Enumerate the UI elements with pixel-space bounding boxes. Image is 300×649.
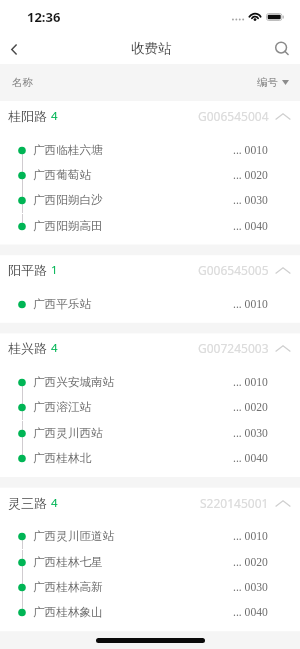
button[interactable]: 桂兴路: [0, 333, 300, 363]
button[interactable]: Search: [267, 34, 297, 64]
staticText: ... 0010: [233, 298, 268, 311]
staticText: ... 0020: [233, 401, 268, 414]
staticText: ... 0030: [233, 581, 268, 594]
staticText: 广西阳朔高田: [33, 219, 103, 234]
staticText: 收费站: [131, 40, 172, 57]
button[interactable]: 广西灵川匝道站: [0, 524, 300, 549]
staticText: G007245003: [198, 340, 269, 356]
button[interactable]: 广西灵川西站: [0, 421, 300, 446]
button[interactable]: 广西兴安城南站: [0, 370, 300, 395]
staticText: ... 0010: [233, 376, 268, 389]
button[interactable]: 广西桂林高新: [0, 575, 300, 600]
staticText: 广西桂林高新: [33, 580, 103, 595]
button[interactable]: 桂阳路: [0, 101, 300, 131]
button[interactable]: 广西葡萄站: [0, 163, 300, 188]
button[interactable]: 广西平乐站: [0, 292, 300, 317]
button[interactable]: 广西桂林北: [0, 446, 300, 471]
staticText: 4: [51, 495, 58, 511]
staticText: 广西桂林七星: [33, 555, 103, 570]
staticText: G006545004: [198, 108, 269, 124]
staticText: ... 0010: [233, 144, 268, 157]
button[interactable]: 编号: [257, 76, 289, 89]
button[interactable]: Back: [0, 34, 29, 64]
staticText: 名称: [12, 76, 33, 89]
staticText: 广西阳朔白沙: [33, 193, 103, 208]
staticText: 12:36: [27, 8, 61, 26]
staticText: S220145001: [200, 495, 269, 511]
staticText: 阳平路: [8, 262, 47, 278]
button[interactable]: 广西桂林七星: [0, 550, 300, 575]
staticText: 桂兴路: [8, 340, 47, 356]
staticText: ... 0040: [233, 452, 268, 465]
staticText: 广西葡萄站: [33, 168, 91, 183]
staticText: 广西桂林北: [33, 451, 91, 466]
staticText: 广西桂林象山: [33, 605, 103, 620]
staticText: 广西溶江站: [33, 400, 91, 415]
staticText: ... 0020: [233, 169, 268, 182]
staticText: ... 0020: [233, 556, 268, 569]
staticText: 桂阳路: [8, 108, 47, 124]
staticText: ... 0040: [233, 606, 268, 619]
staticText: 广西灵川匝道站: [33, 529, 115, 544]
button[interactable]: 广西阳朔白沙: [0, 188, 300, 213]
staticText: ... 0030: [233, 194, 268, 207]
staticText: 4: [51, 108, 58, 124]
button[interactable]: 广西临桂六塘: [0, 138, 300, 163]
staticText: 灵三路: [8, 495, 47, 511]
button[interactable]: 阳平路: [0, 255, 300, 285]
staticText: 广西平乐站: [33, 297, 91, 312]
staticText: ... 0030: [233, 427, 268, 440]
button[interactable]: 广西阳朔高田: [0, 214, 300, 239]
button[interactable]: 广西溶江站: [0, 395, 300, 420]
staticText: 广西临桂六塘: [33, 143, 103, 158]
staticText: 4: [51, 340, 58, 356]
staticText: ... 0040: [233, 220, 268, 233]
button[interactable]: 广西桂林象山: [0, 600, 300, 625]
staticText: 编号: [257, 76, 278, 89]
staticText: 广西灵川西站: [33, 426, 103, 441]
staticText: G006545005: [198, 262, 269, 278]
button[interactable]: 灵三路: [0, 488, 300, 518]
staticText: 1: [51, 262, 58, 278]
staticText: ... 0010: [233, 530, 268, 543]
staticText: 广西兴安城南站: [33, 375, 115, 390]
